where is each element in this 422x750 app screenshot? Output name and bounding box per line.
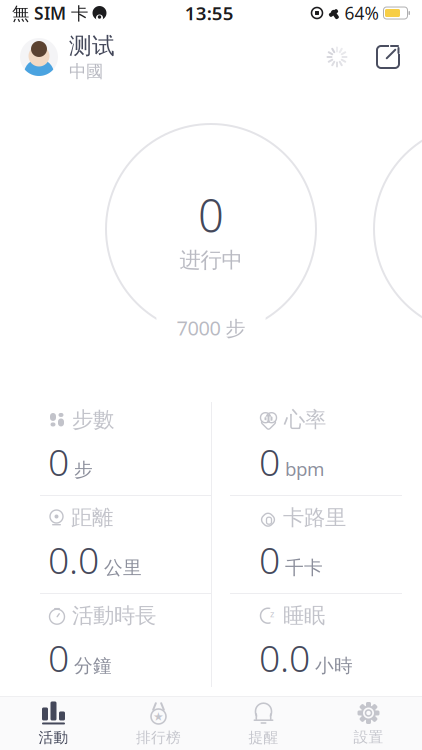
staticText: 設置 bbox=[353, 728, 383, 746]
staticText: 0 bbox=[259, 535, 280, 584]
staticText: 0 bbox=[198, 185, 224, 245]
staticText: 0 bbox=[48, 633, 69, 682]
staticText: 公里 bbox=[104, 556, 142, 579]
staticText: 心率 bbox=[284, 407, 326, 433]
staticText: 13:55 bbox=[185, 1, 234, 25]
button[interactable]: 卡路里 bbox=[211, 496, 422, 593]
button[interactable]: 心率 bbox=[211, 398, 422, 495]
button[interactable]: 距離 bbox=[0, 496, 211, 593]
staticText: 0.0 bbox=[259, 633, 310, 682]
button[interactable]: 活動 bbox=[1, 697, 106, 749]
staticText: 活動時長 bbox=[72, 603, 156, 629]
button[interactable]: 同步中 bbox=[326, 46, 348, 68]
staticText: 提醒 bbox=[248, 728, 278, 746]
staticText: 中國 bbox=[69, 61, 103, 82]
button[interactable]: 测试 bbox=[20, 32, 115, 82]
staticText: 进行中 bbox=[179, 247, 242, 273]
staticText: 测试 bbox=[69, 32, 115, 60]
staticText: 分鐘 bbox=[74, 654, 112, 677]
button[interactable]: 設置 bbox=[316, 697, 421, 749]
staticText: 小時 bbox=[315, 654, 353, 677]
staticText: bpm bbox=[285, 456, 324, 481]
staticText: 步數 bbox=[72, 407, 114, 433]
staticText: 卡路里 bbox=[283, 505, 346, 531]
staticText: z bbox=[270, 607, 274, 620]
button[interactable]: 步數 bbox=[0, 398, 211, 495]
button[interactable]: 活動時長 bbox=[0, 594, 211, 691]
button[interactable]: ★ bbox=[106, 697, 211, 749]
staticText: 64% bbox=[344, 1, 378, 24]
staticText: 睡眠 bbox=[283, 603, 325, 629]
staticText: 距離 bbox=[71, 505, 113, 531]
button[interactable]: z bbox=[211, 594, 422, 691]
button[interactable]: 分享 bbox=[374, 43, 402, 71]
staticText: 排行榜 bbox=[136, 728, 181, 746]
staticText: ★ bbox=[153, 710, 164, 723]
staticText: 0 bbox=[259, 437, 280, 486]
staticText: 無 SIM 卡 bbox=[12, 1, 88, 24]
staticText: 0 bbox=[48, 437, 69, 486]
staticText: 7000 步 bbox=[176, 314, 245, 341]
staticText: 千卡 bbox=[285, 556, 323, 579]
staticText: 活動 bbox=[38, 728, 68, 746]
staticText: 0.0 bbox=[48, 535, 99, 584]
button[interactable]: 提醒 bbox=[211, 697, 316, 749]
staticText: 步 bbox=[74, 458, 93, 481]
